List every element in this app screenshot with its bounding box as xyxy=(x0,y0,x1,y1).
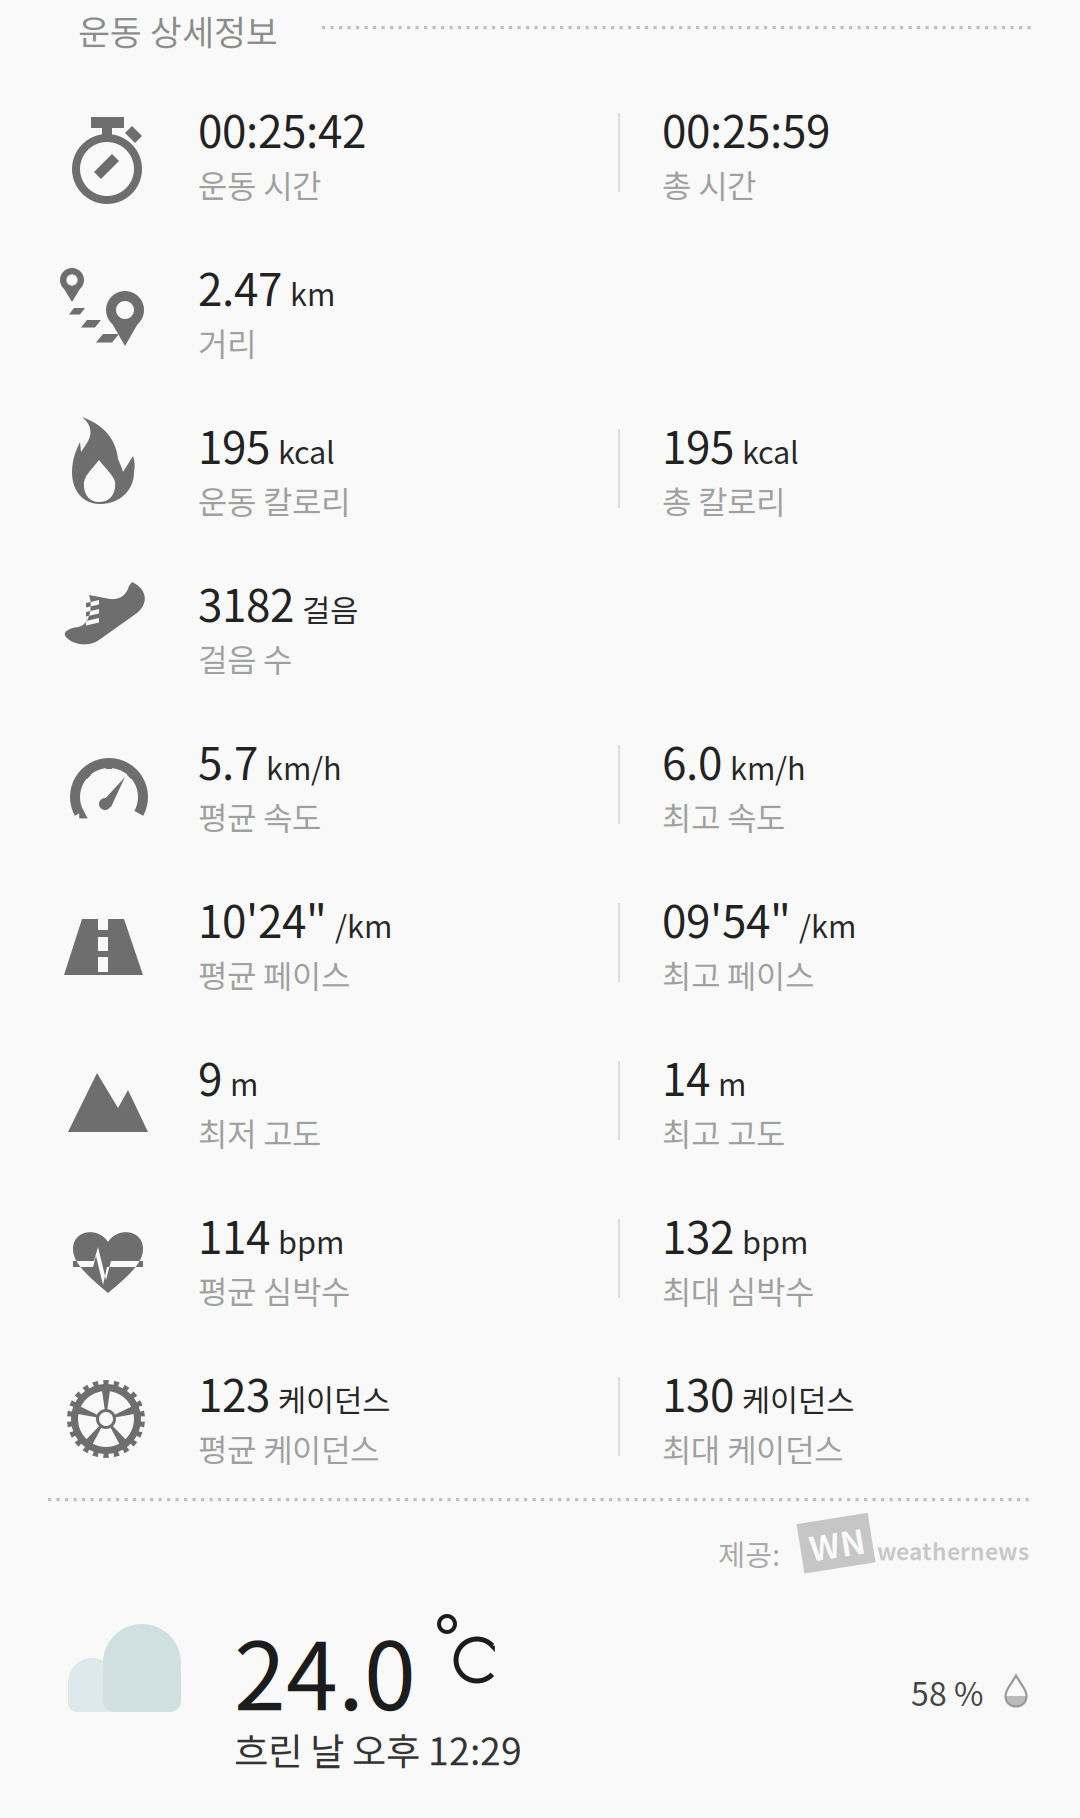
staticText: 195 xyxy=(662,413,734,477)
staticText: 123 xyxy=(198,1361,270,1425)
staticText: 평균 속도 xyxy=(198,793,321,839)
staticText: km/h xyxy=(730,744,806,789)
staticText: 최고 고도 xyxy=(662,1109,785,1155)
staticText: 9 xyxy=(198,1045,222,1109)
staticText: 24.0 xyxy=(234,1602,416,1737)
staticText: bpm xyxy=(742,1218,808,1263)
staticText: weathernews xyxy=(877,1534,1029,1567)
staticText: 00:25:59 xyxy=(662,97,830,161)
staticText: 총 시간 xyxy=(662,161,756,207)
staticText: 10'24" xyxy=(198,887,327,951)
staticText: /km xyxy=(799,902,856,947)
staticText: 걸음 xyxy=(302,586,358,631)
staticText: 2.47 xyxy=(198,255,282,319)
staticText: 132 xyxy=(662,1203,734,1267)
staticText: m xyxy=(718,1060,746,1105)
staticText: 114 xyxy=(198,1203,270,1267)
staticText: 195 xyxy=(198,413,270,477)
staticText: kcal xyxy=(278,428,335,473)
staticText: 최대 케이던스 xyxy=(662,1425,843,1471)
staticText: 운동 시간 xyxy=(198,161,321,207)
staticText: 흐린 날 오후 12:29 xyxy=(234,1722,522,1776)
staticText: 09'54" xyxy=(662,887,791,951)
staticText: 최저 고도 xyxy=(198,1109,321,1155)
staticText: 거리 xyxy=(198,319,256,365)
staticText: 운동 칼로리 xyxy=(198,477,350,523)
staticText: 최고 페이스 xyxy=(662,951,814,997)
staticText: 58 % xyxy=(911,1669,983,1715)
staticText: km xyxy=(290,270,335,315)
staticText: 최대 심박수 xyxy=(662,1267,814,1313)
staticText: 14 xyxy=(662,1045,710,1109)
staticText: 평균 페이스 xyxy=(198,951,350,997)
staticText: 00:25:42 xyxy=(198,97,366,161)
staticText: 6.0 xyxy=(662,729,722,793)
staticText: m xyxy=(230,1060,258,1105)
staticText: km/h xyxy=(266,744,342,789)
staticText: 걸음 수 xyxy=(198,635,292,681)
staticText: /km xyxy=(335,902,392,947)
staticText: 운동 상세정보 xyxy=(78,5,278,55)
staticText: 최고 속도 xyxy=(662,793,785,839)
staticText: 제공: xyxy=(718,1532,780,1574)
staticText: 케이던스 xyxy=(742,1376,854,1421)
staticText: 130 xyxy=(662,1361,734,1425)
staticText: 평균 케이던스 xyxy=(198,1425,379,1471)
staticText: 3182 xyxy=(198,571,294,635)
staticText: WN xyxy=(809,1519,865,1567)
staticText: 케이던스 xyxy=(278,1376,390,1421)
staticText: 총 칼로리 xyxy=(662,477,785,523)
staticText: kcal xyxy=(742,428,799,473)
button[interactable]: 제공: xyxy=(712,1508,1034,1578)
staticText: 5.7 xyxy=(198,729,258,793)
staticText: bpm xyxy=(278,1218,344,1263)
staticText: 평균 심박수 xyxy=(198,1267,350,1313)
